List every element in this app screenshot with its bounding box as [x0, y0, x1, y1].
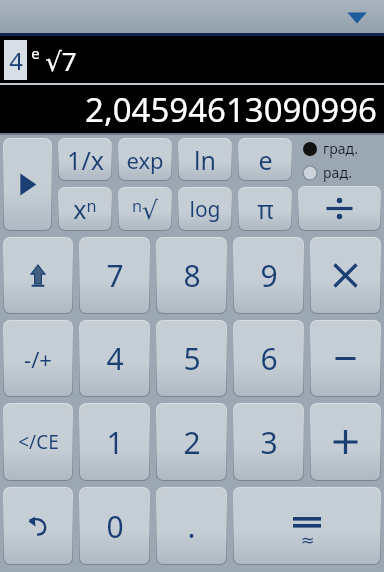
button[interactable]: Memory	[4, 238, 72, 313]
staticText: 0	[106, 506, 124, 547]
button[interactable]: Subtract	[311, 321, 380, 396]
button[interactable]: 9	[234, 238, 303, 313]
button[interactable]: град.	[303, 138, 358, 159]
button[interactable]: Divide	[299, 187, 380, 230]
staticText: 4	[106, 338, 124, 379]
staticText: xⁿ	[73, 192, 97, 226]
button[interactable]: рад.	[303, 162, 352, 183]
staticText: 9	[260, 255, 278, 296]
staticText: .	[187, 506, 196, 547]
button[interactable]: 5	[157, 321, 226, 396]
staticText: ⁿ√	[132, 192, 158, 226]
staticText: 5	[183, 338, 201, 379]
button[interactable]: 0	[80, 488, 149, 564]
staticText: e	[31, 43, 40, 63]
staticText: 3	[260, 422, 278, 463]
button[interactable]: </CE	[4, 404, 72, 480]
staticText: 2,04594613090996	[85, 87, 377, 132]
button[interactable]: 2	[157, 404, 226, 480]
button[interactable]: .	[157, 488, 226, 564]
button[interactable]: ln	[179, 139, 231, 180]
staticText: log	[189, 195, 221, 224]
button[interactable]: xⁿ	[59, 188, 111, 230]
button[interactable]: Equals	[234, 488, 380, 564]
button[interactable]: 7	[80, 238, 149, 313]
button[interactable]: 3	[234, 404, 303, 480]
staticText: π	[257, 192, 274, 226]
button[interactable]: 6	[234, 321, 303, 396]
button[interactable]: More functions	[4, 139, 51, 230]
button[interactable]: Menu	[344, 4, 370, 30]
staticText: </CE	[18, 429, 59, 455]
staticText: 7	[106, 255, 124, 296]
button[interactable]: 4	[80, 321, 149, 396]
button[interactable]: ⁿ√	[119, 188, 171, 230]
button[interactable]: Multiply	[311, 238, 380, 313]
button[interactable]: log	[179, 188, 231, 230]
button[interactable]: Undo	[4, 488, 72, 564]
button[interactable]: exp	[119, 139, 171, 180]
staticText: 1	[106, 422, 124, 463]
staticText: 6	[260, 338, 278, 379]
staticText: рад.	[323, 163, 352, 182]
button[interactable]: e	[239, 139, 291, 180]
staticText: 8	[183, 255, 201, 296]
button[interactable]: -/+	[4, 321, 72, 396]
button[interactable]: π	[239, 188, 291, 230]
staticText: -/+	[24, 344, 52, 374]
button[interactable]: 8	[157, 238, 226, 313]
button[interactable]: 1/x	[59, 139, 111, 180]
staticText: exp	[126, 145, 164, 175]
staticText: ln	[194, 143, 216, 177]
staticText: град.	[323, 139, 358, 158]
staticText: 1/x	[67, 143, 104, 177]
button[interactable]: 1	[80, 404, 149, 480]
button[interactable]: Add	[311, 404, 380, 480]
staticText: 4	[9, 44, 23, 77]
staticText: ≈	[300, 530, 315, 550]
staticText: √7	[45, 43, 77, 78]
staticText: e	[258, 143, 273, 177]
staticText: 2	[183, 422, 201, 463]
